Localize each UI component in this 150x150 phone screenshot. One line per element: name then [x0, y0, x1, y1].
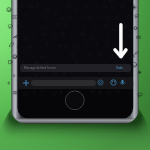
- button[interactable]: Message deleted for me: [20, 64, 131, 72]
- staticText: Message deleted for me: [24, 66, 56, 70]
- button[interactable]: Camera: [97, 79, 104, 86]
- button[interactable]: Voice message: [119, 79, 126, 86]
- staticText: Undo: [116, 66, 123, 70]
- button[interactable]: Attach: [22, 79, 30, 87]
- button[interactable]: Sticker: [110, 79, 117, 86]
